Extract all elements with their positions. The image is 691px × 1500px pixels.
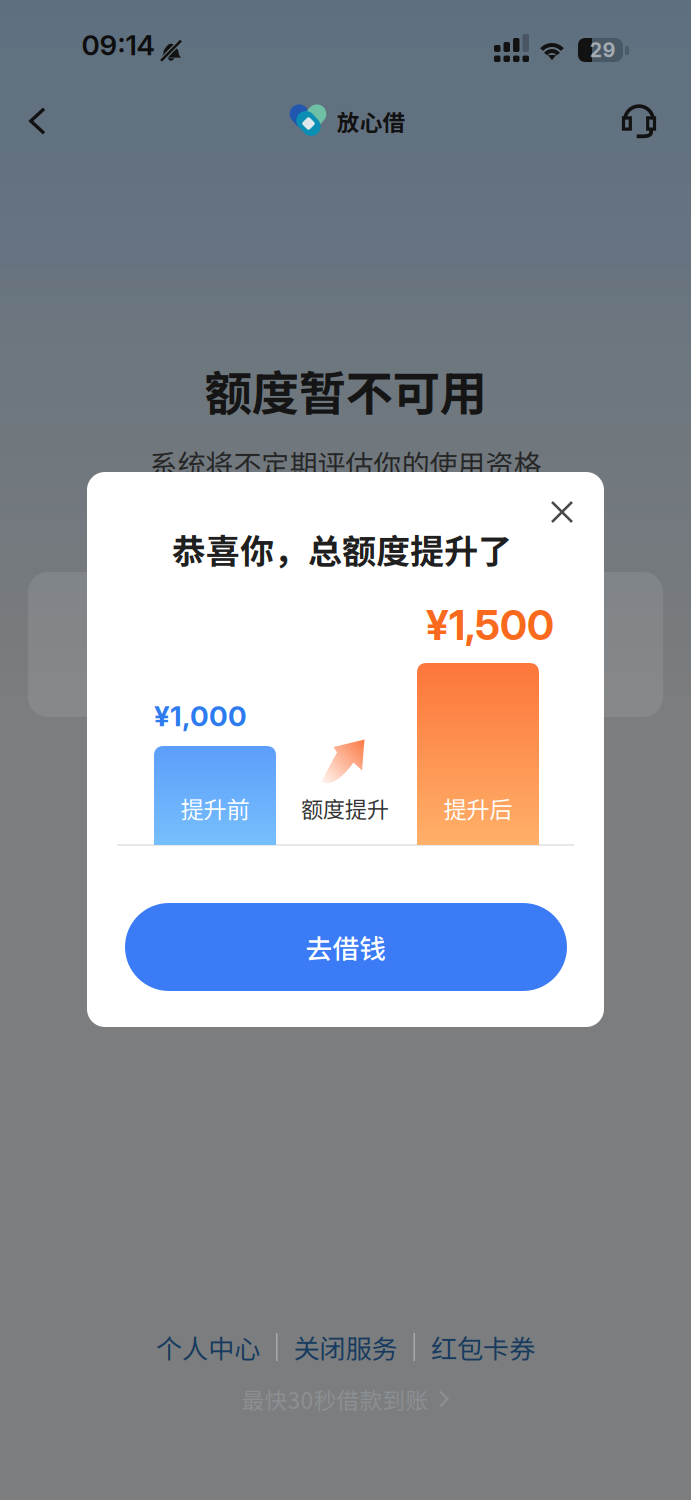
staticText: 提升前 (180, 791, 249, 825)
staticText: 提升后 (443, 791, 512, 825)
button[interactable]: Close (539, 489, 585, 535)
staticText: 红包卡券 (431, 1328, 535, 1366)
staticText: 恭喜你，总额度提升了 (172, 524, 512, 573)
staticText: 29 (589, 38, 615, 62)
button[interactable]: Back (8, 92, 66, 150)
button[interactable]: 个人中心 (156, 1327, 260, 1367)
staticText: 系统将不定期评估你的使用资格 (149, 443, 541, 483)
staticText: 额度提升 (301, 792, 389, 824)
button[interactable]: 去借钱 (125, 903, 567, 991)
button[interactable]: Customer service (610, 92, 668, 150)
staticText: ¥1,500 (426, 600, 554, 650)
staticText: 09:14 (81, 28, 154, 62)
staticText: ¥1,000 (154, 699, 247, 733)
staticText: 额度暂不可用 (204, 356, 486, 424)
staticText: 个人中心 (156, 1328, 260, 1366)
button[interactable]: 最快30秒借款到账 (241, 1382, 449, 1416)
button[interactable]: 关闭服务 (293, 1327, 397, 1367)
staticText: 放心借 (336, 105, 405, 137)
staticText: 去借钱 (305, 928, 386, 966)
staticText: 最快30秒借款到账 (241, 1383, 428, 1415)
button[interactable]: 红包卡券 (431, 1327, 535, 1367)
staticText: 关闭服务 (293, 1328, 397, 1366)
